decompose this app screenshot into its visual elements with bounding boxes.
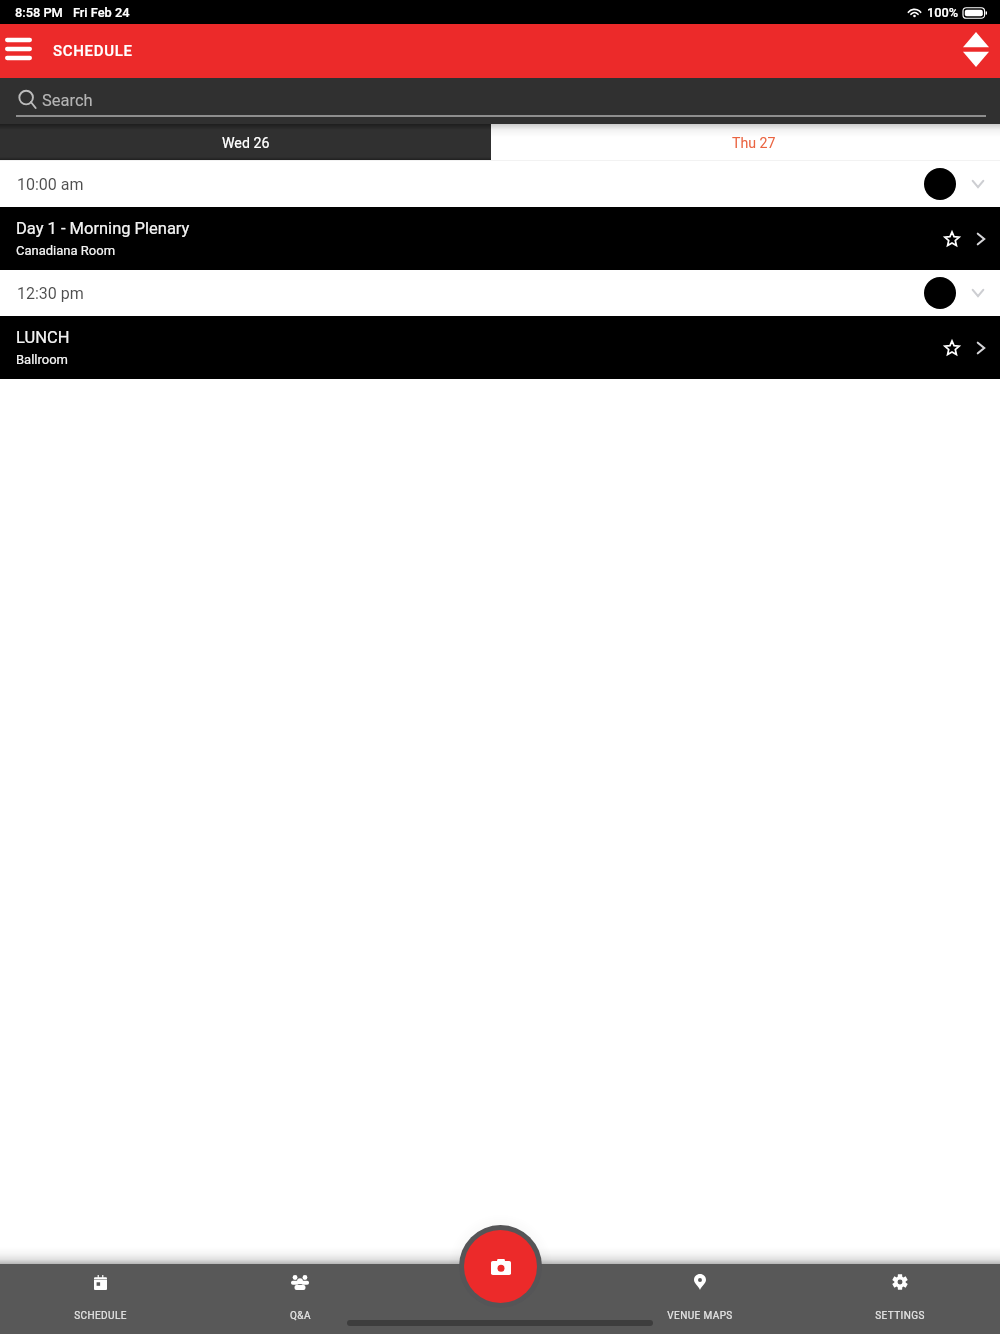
staticText: Wed 26 <box>222 135 270 152</box>
button[interactable]: Wed 26 <box>0 124 491 161</box>
button[interactable]: 10:00 am <box>0 161 1000 207</box>
button[interactable]: Sort <box>963 32 989 67</box>
staticText: Q&A <box>290 1310 311 1322</box>
button[interactable]: VENUE MAPS <box>600 1264 800 1334</box>
staticText: 10:00 am <box>17 175 84 194</box>
staticText: Search <box>42 91 93 110</box>
button[interactable]: Take photo <box>464 1230 537 1303</box>
button[interactable]: Thu 27 <box>491 124 1000 161</box>
button[interactable]: Q&A <box>200 1264 400 1334</box>
staticText: VENUE MAPS <box>667 1310 733 1322</box>
staticText: SCHEDULE <box>53 42 133 60</box>
button[interactable]: SETTINGS <box>800 1264 1000 1334</box>
staticText: SCHEDULE <box>74 1310 127 1322</box>
button[interactable]: Search <box>0 78 1000 124</box>
staticText: SETTINGS <box>875 1310 925 1322</box>
staticText: Day 1 - Morning Plenary <box>16 219 190 238</box>
button[interactable]: Add to favourites <box>941 337 963 359</box>
staticText: LUNCH <box>16 328 70 347</box>
staticText: 8:58 PM <box>15 5 63 20</box>
button[interactable]: SCHEDULE <box>0 1264 200 1334</box>
staticText: 12:30 pm <box>17 284 84 303</box>
staticText: Ballroom <box>16 352 68 367</box>
staticText: Thu 27 <box>732 135 776 152</box>
staticText: 100% <box>927 5 959 20</box>
staticText: Fri Feb 24 <box>73 5 130 20</box>
button[interactable]: Open navigation menu <box>5 33 32 65</box>
staticText: Canadiana Room <box>16 243 116 258</box>
button[interactable]: Day 1 - Morning Plenary <box>0 207 1000 270</box>
button[interactable]: 12:30 pm <box>0 270 1000 316</box>
button[interactable]: LUNCH <box>0 316 1000 379</box>
button[interactable]: Add to favourites <box>941 228 963 250</box>
